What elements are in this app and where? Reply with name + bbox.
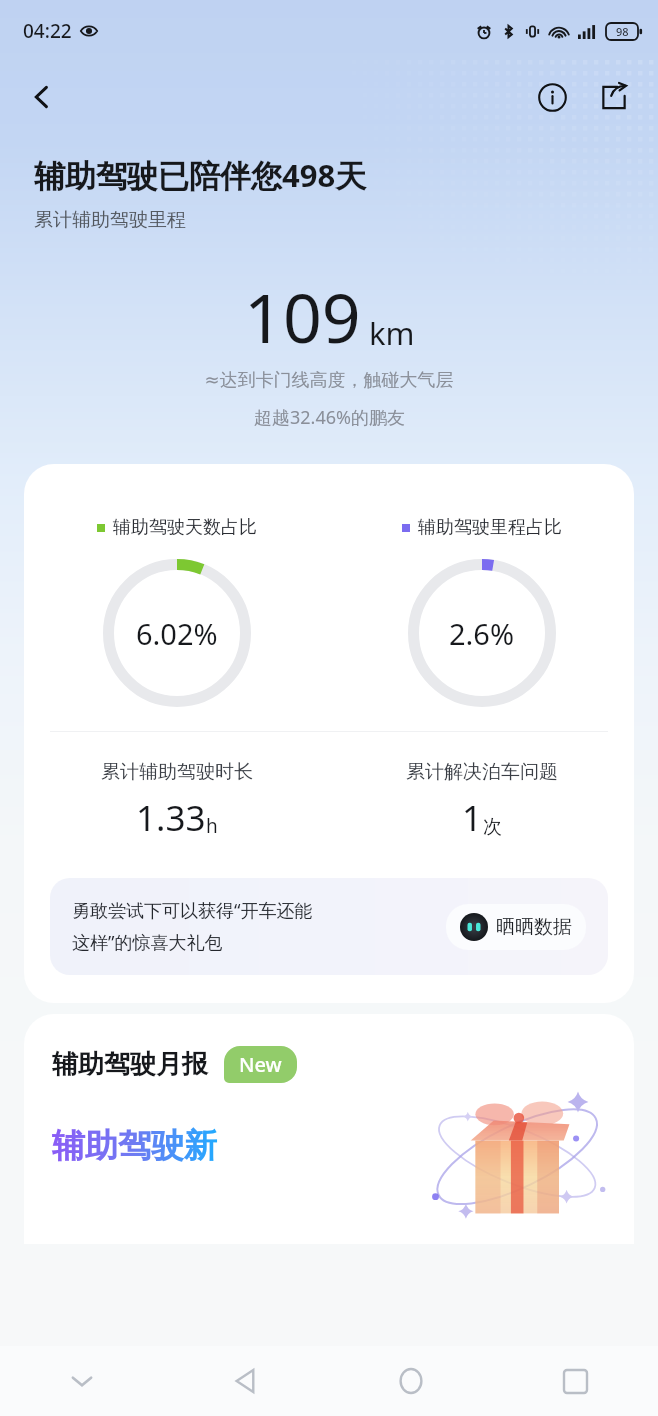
button[interactable]: Recent apps — [493, 1346, 658, 1416]
button[interactable]: Home — [328, 1346, 493, 1416]
staticText: 1.33 — [136, 794, 206, 842]
staticText: 累计辅助驾驶里程 — [34, 208, 186, 232]
button[interactable]: Collapse — [0, 1346, 164, 1416]
staticText: 04:22 — [23, 18, 72, 44]
button[interactable]: Info — [528, 73, 576, 121]
staticText: ≈达到卡门线高度，触碰大气层 — [204, 369, 454, 392]
staticText: 辅助驾驶天数占比 — [113, 516, 257, 539]
staticText: 辅助驾驶月报 — [52, 1048, 208, 1081]
staticText: 超越32.46%的鹏友 — [254, 405, 405, 430]
staticText: 2.6% — [449, 614, 515, 653]
staticText: 次 — [483, 815, 502, 839]
staticText: 109 — [244, 270, 361, 363]
staticText: km — [369, 312, 415, 354]
staticText: 1 — [462, 794, 483, 842]
button[interactable]: Share — [590, 73, 638, 121]
button[interactable]: 辅助驾驶月报 — [24, 1014, 634, 1244]
staticText: 6.02% — [136, 614, 218, 653]
staticText: h — [206, 813, 218, 839]
button[interactable]: 晒晒数据 — [446, 904, 586, 950]
staticText: 晒晒数据 — [496, 915, 572, 939]
staticText: 累计解决泊车问题 — [406, 760, 558, 784]
staticText: 98 — [616, 24, 629, 39]
button[interactable]: Back — [164, 1346, 328, 1416]
button[interactable]: 勇敢尝试下可以获得“开车还能 — [50, 878, 608, 975]
staticText: 勇敢尝试下可以获得“开车还能 — [72, 898, 313, 923]
staticText: 辅助驾驶已陪伴您498天 — [34, 154, 367, 196]
staticText: 累计辅助驾驶时长 — [101, 760, 253, 784]
button[interactable]: Back — [18, 73, 66, 121]
staticText: New — [239, 1051, 282, 1078]
staticText: 辅助驾驶里程占比 — [418, 516, 562, 539]
staticText: 这样”的惊喜大礼包 — [72, 930, 223, 955]
staticText: 辅助驾驶新 — [52, 1125, 217, 1167]
